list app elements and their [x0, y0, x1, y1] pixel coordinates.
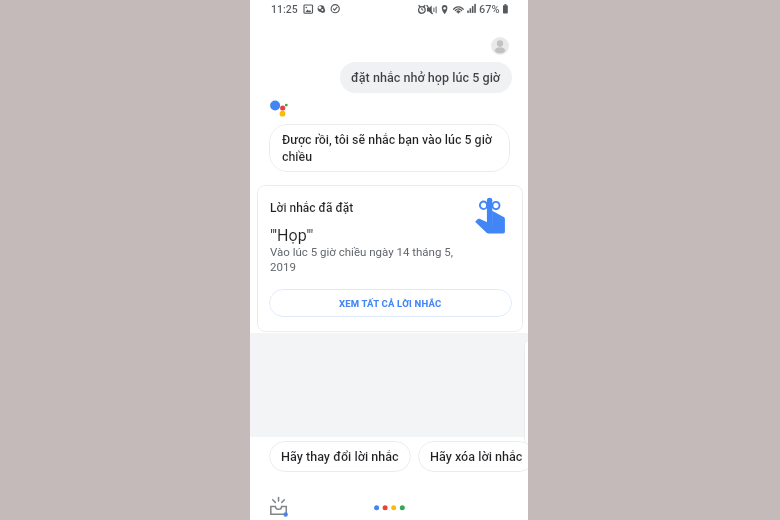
button[interactable]: Google Assistant microphone	[364, 498, 412, 518]
staticText: Hãy thay đổi lời nhắc	[281, 449, 399, 464]
staticText: Được rồi, tôi sẽ nhắc bạn vào lúc 5 giờ …	[282, 132, 502, 164]
staticText: đặt nhắc nhở họp lúc 5 giờ	[351, 70, 501, 85]
staticText: Lời nhắc đã đặt	[270, 201, 354, 215]
staticText: Hãy xóa lời nhắc	[430, 449, 523, 464]
staticText: Vào lúc 5 giờ chiều ngày 14 tháng 5, 201…	[270, 245, 470, 274]
button[interactable]: Explore	[263, 490, 295, 520]
button[interactable]: đặt nhắc nhở họp lúc 5 giờ	[340, 62, 512, 93]
button[interactable]: Hãy xóa lời nhắc	[418, 441, 528, 472]
staticText: 67%	[479, 3, 500, 16]
staticText: 11:25	[271, 3, 298, 15]
button[interactable]: Hãy thay đổi lời nhắc	[269, 441, 411, 472]
button[interactable]: Được rồi, tôi sẽ nhắc bạn vào lúc 5 giờ …	[269, 124, 510, 172]
button[interactable]: XEM TẤT CẢ LỜI NHẮC	[269, 289, 512, 317]
button[interactable]: Account	[491, 37, 509, 55]
staticText: XEM TẤT CẢ LỜI NHẮC	[339, 298, 442, 309]
staticText: "'Họp'"	[270, 226, 314, 245]
